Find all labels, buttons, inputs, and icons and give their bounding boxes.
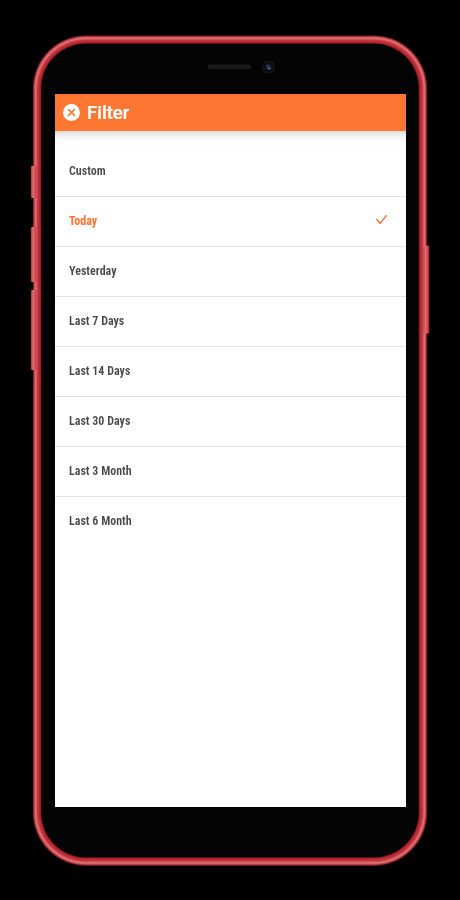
staticText: Last 3 Month [69,464,132,478]
button[interactable]: Last 3 Month [55,447,406,496]
button[interactable]: Custom [55,147,406,196]
staticText: Last 30 Days [69,414,131,428]
staticText: Yesterday [69,264,117,278]
staticText: Last 7 Days [69,314,125,328]
button[interactable]: Today [55,197,406,246]
button[interactable]: Last 14 Days [55,347,406,396]
button[interactable]: Last 7 Days [55,297,406,346]
staticText: Custom [69,164,106,178]
button[interactable]: Close [63,104,80,121]
staticText: Last 6 Month [69,514,132,528]
staticText: Last 14 Days [69,364,131,378]
button[interactable]: Last 6 Month [55,497,406,546]
staticText: Today [69,214,98,228]
staticText: Filter [87,102,130,124]
button[interactable]: Yesterday [55,247,406,296]
button[interactable]: Last 30 Days [55,397,406,446]
